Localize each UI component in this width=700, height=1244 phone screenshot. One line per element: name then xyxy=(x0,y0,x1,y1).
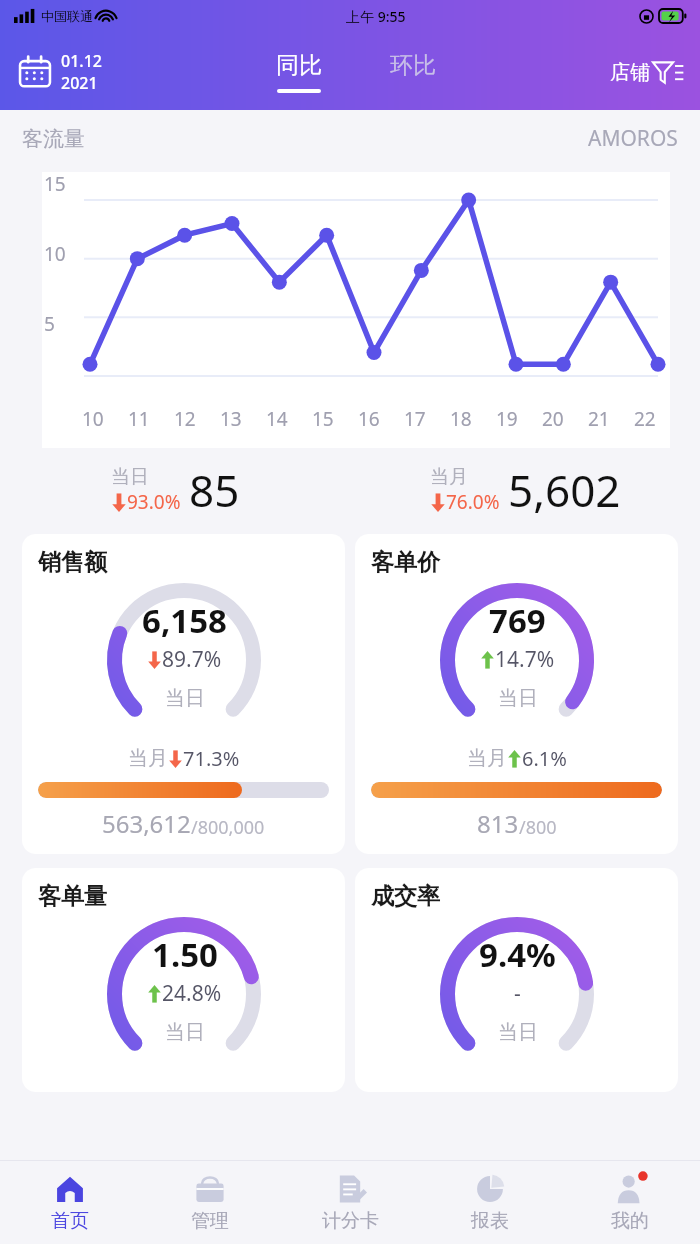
staticText: 中国联通 xyxy=(41,8,93,24)
staticText: 计分卡 xyxy=(322,1209,379,1233)
staticText: 2021 xyxy=(61,72,98,94)
staticText: 报表 xyxy=(471,1209,509,1233)
staticText: 01.12 xyxy=(61,50,102,72)
staticText: 当日 xyxy=(165,1020,205,1045)
staticText: 当日 xyxy=(165,686,205,711)
staticText: 客流量 xyxy=(22,126,85,152)
staticText: 14 xyxy=(266,406,288,432)
staticText: 6.1% xyxy=(522,745,567,772)
staticText: 93.0% xyxy=(127,489,181,515)
button[interactable]: 客单价 xyxy=(355,534,678,854)
staticText: 客单价 xyxy=(371,548,440,577)
staticText: 我的 xyxy=(611,1209,649,1233)
staticText: /800,000 xyxy=(191,815,265,840)
staticText: 20 xyxy=(542,406,564,432)
button[interactable]: 计分卡 xyxy=(280,1160,420,1244)
staticText: 当月 xyxy=(467,746,507,771)
staticText: 当日 xyxy=(498,686,538,711)
staticText: 环比 xyxy=(390,51,436,80)
staticText: 上午 9:55 xyxy=(346,7,406,26)
staticText: 当日 xyxy=(111,465,149,489)
staticText: 19 xyxy=(496,406,518,432)
staticText: 14.7% xyxy=(495,645,555,674)
staticText: 5,602 xyxy=(508,460,621,520)
staticText: 24.8% xyxy=(162,979,222,1008)
staticText: 21 xyxy=(588,406,610,432)
staticText: 客单量 xyxy=(38,882,107,911)
staticText: - xyxy=(514,979,521,1008)
staticText: 1.50 xyxy=(152,932,218,977)
staticText: 店铺 xyxy=(610,60,650,85)
staticText: 9.4% xyxy=(479,932,556,977)
staticText: 同比 xyxy=(276,51,322,80)
button[interactable]: 我的 xyxy=(560,1160,700,1244)
staticText: 销售额 xyxy=(38,548,107,577)
button[interactable]: 环比 xyxy=(380,51,446,93)
staticText: 15 xyxy=(44,171,66,197)
staticText: 85 xyxy=(189,460,240,520)
button[interactable]: 销售额 xyxy=(22,534,345,854)
button[interactable]: 报表 xyxy=(420,1160,560,1244)
staticText: 22 xyxy=(634,406,656,432)
staticText: 13 xyxy=(220,406,242,432)
staticText: 11 xyxy=(128,406,150,432)
staticText: 10 xyxy=(82,406,104,432)
staticText: 当月 xyxy=(128,746,168,771)
staticText: 5 xyxy=(44,311,55,337)
staticText: 16 xyxy=(358,406,380,432)
staticText: 813 xyxy=(477,807,519,840)
staticText: 18 xyxy=(450,406,472,432)
staticText: 首页 xyxy=(51,1209,89,1233)
button[interactable]: 同比 xyxy=(266,37,332,107)
staticText: 563,612 xyxy=(102,807,191,840)
staticText: 71.3% xyxy=(183,745,240,772)
button[interactable]: 管理 xyxy=(140,1160,280,1244)
staticText: 17 xyxy=(404,406,426,432)
staticText: 管理 xyxy=(191,1209,229,1233)
staticText: 10 xyxy=(44,241,66,267)
staticText: AMOROS xyxy=(588,124,678,153)
staticText: 15 xyxy=(312,406,334,432)
staticText: 当月 xyxy=(430,465,468,489)
staticText: 76.0% xyxy=(446,489,500,515)
button[interactable]: 客单量 xyxy=(22,868,345,1092)
staticText: 6,158 xyxy=(142,598,227,643)
button[interactable]: Store filter xyxy=(610,57,684,87)
staticText: 成交率 xyxy=(371,882,440,911)
button[interactable]: 首页 xyxy=(0,1160,140,1244)
staticText: 89.7% xyxy=(162,645,222,674)
button[interactable]: 01.12 xyxy=(18,50,102,94)
staticText: 769 xyxy=(489,598,546,643)
button[interactable]: 成交率 xyxy=(355,868,678,1092)
staticText: /800 xyxy=(519,815,557,840)
staticText: 12 xyxy=(174,406,196,432)
staticText: 当日 xyxy=(498,1020,538,1045)
